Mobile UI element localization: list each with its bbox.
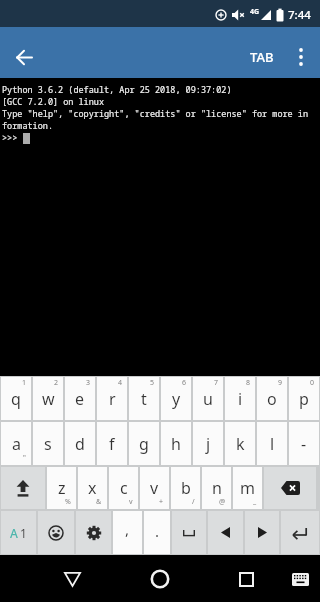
staticText: b xyxy=(181,477,191,499)
staticText: l xyxy=(270,433,275,455)
staticText: o xyxy=(267,388,277,410)
staticText: A xyxy=(10,525,18,541)
staticText: i xyxy=(238,388,243,410)
button[interactable]: q xyxy=(1,377,31,420)
staticText: n xyxy=(212,477,222,499)
button[interactable]: s xyxy=(33,422,63,465)
staticText: h xyxy=(171,433,181,455)
button[interactable] xyxy=(245,511,279,554)
staticText: 0 xyxy=(310,378,315,388)
button[interactable]: o xyxy=(257,377,287,420)
button[interactable]: b xyxy=(171,467,200,509)
staticText: r xyxy=(109,388,116,410)
staticText: d xyxy=(75,433,85,455)
button[interactable]: t xyxy=(129,377,159,420)
staticText: Python 3.6.2 (default, Apr 25 2018, 09:3… xyxy=(2,84,232,96)
staticText: t xyxy=(141,388,147,410)
staticText: / xyxy=(192,497,195,507)
staticText: g xyxy=(139,433,149,455)
staticText: 7:44 xyxy=(288,7,311,23)
staticText: 7 xyxy=(214,378,219,388)
button[interactable]: e xyxy=(65,377,95,420)
button[interactable]: r xyxy=(97,377,127,420)
button[interactable]: i xyxy=(225,377,255,420)
staticText: 1 xyxy=(22,378,27,388)
staticText: " xyxy=(23,453,26,463)
button[interactable]: . xyxy=(144,511,170,554)
button[interactable]: p xyxy=(289,377,319,420)
staticText: k xyxy=(236,433,245,455)
button[interactable] xyxy=(1,467,45,509)
staticText: s xyxy=(44,433,52,455)
staticText: y xyxy=(172,388,181,410)
staticText: 4 xyxy=(118,378,123,388)
button[interactable] xyxy=(208,511,243,554)
staticText: [GCC 7.2.0] on linux xyxy=(2,96,105,108)
staticText: + xyxy=(159,497,164,507)
staticText: f xyxy=(109,433,115,455)
staticText: 2 xyxy=(54,378,59,388)
button[interactable]: w xyxy=(33,377,63,420)
staticText: 3 xyxy=(86,378,91,388)
staticText: m xyxy=(240,477,255,499)
button[interactable]: j xyxy=(193,422,223,465)
staticText: p xyxy=(299,388,309,410)
staticText: TAB xyxy=(250,48,274,66)
staticText: 1 xyxy=(20,525,27,541)
staticText: Type "help", "copyright", "credits" or "… xyxy=(2,108,309,120)
button[interactable]: - xyxy=(289,422,319,465)
button[interactable]: x xyxy=(78,467,107,509)
button[interactable] xyxy=(281,511,319,554)
staticText: a xyxy=(12,433,21,455)
staticText: - xyxy=(301,433,307,455)
button[interactable] xyxy=(282,36,320,78)
staticText: q xyxy=(11,388,21,410)
button[interactable] xyxy=(54,561,90,597)
button[interactable] xyxy=(172,511,206,554)
staticText: 8 xyxy=(246,378,251,388)
staticText: 5 xyxy=(150,378,155,388)
staticText: 4G xyxy=(250,7,260,17)
button[interactable]: u xyxy=(193,377,223,420)
button[interactable] xyxy=(228,561,264,597)
staticText: , xyxy=(125,519,130,539)
button[interactable]: g xyxy=(129,422,159,465)
button[interactable]: k xyxy=(225,422,255,465)
button[interactable]: y xyxy=(161,377,191,420)
button[interactable]: f xyxy=(97,422,127,465)
button[interactable]: , xyxy=(113,511,142,554)
button[interactable] xyxy=(0,36,48,78)
staticText: e xyxy=(75,388,85,410)
staticText: x xyxy=(88,477,97,499)
button[interactable]: TAB xyxy=(250,36,274,78)
staticText: % xyxy=(65,497,71,507)
button[interactable]: h xyxy=(161,422,191,465)
button[interactable]: d xyxy=(65,422,95,465)
button[interactable]: l xyxy=(257,422,287,465)
staticText: u xyxy=(203,388,213,410)
button[interactable]: a xyxy=(1,422,31,465)
button[interactable] xyxy=(287,566,313,592)
button[interactable] xyxy=(76,511,111,554)
staticText: 6 xyxy=(182,378,187,388)
button[interactable] xyxy=(38,511,74,554)
button[interactable]: A xyxy=(1,511,36,554)
staticText: v xyxy=(129,497,133,507)
button[interactable]: v xyxy=(140,467,169,509)
staticText: v xyxy=(150,477,159,499)
button[interactable]: z xyxy=(47,467,76,509)
button[interactable]: c xyxy=(109,467,138,509)
staticText: & xyxy=(96,497,102,507)
button[interactable] xyxy=(142,561,178,597)
button[interactable] xyxy=(264,467,316,509)
staticText: >>> xyxy=(2,132,23,144)
button[interactable]: n xyxy=(202,467,231,509)
staticText: @ xyxy=(219,497,226,507)
staticText: c xyxy=(120,477,128,499)
staticText: _ xyxy=(253,497,257,507)
button[interactable]: m xyxy=(233,467,262,509)
staticText: w xyxy=(42,388,55,410)
staticText: . xyxy=(155,521,160,541)
staticText: formation. xyxy=(2,120,54,132)
staticText: j xyxy=(206,433,211,455)
